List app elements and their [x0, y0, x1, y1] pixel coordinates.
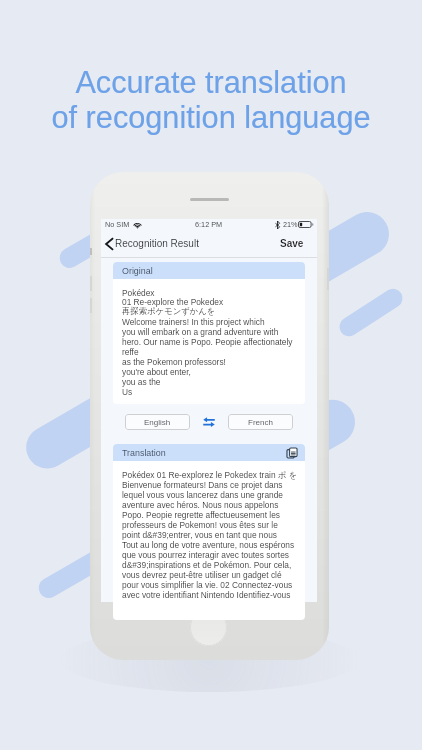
button[interactable]: Save [280, 230, 304, 257]
button[interactable]: Recognition Result [105, 230, 199, 257]
staticText: Accurate translation of recognition lang… [51, 65, 371, 135]
staticText: Translation [122, 448, 166, 458]
button[interactable]: Swap languages [201, 414, 217, 430]
button[interactable]: French [228, 414, 293, 430]
staticText: Pokédex 01 Re-explore the Pokedex 再探索ポケモ… [122, 288, 293, 396]
staticText: Original [122, 266, 153, 276]
staticText: English [144, 418, 171, 427]
staticText: No SIM [105, 220, 130, 228]
staticText: 6:12 PM [195, 220, 223, 228]
staticText: 21% [283, 220, 298, 228]
staticText: Save [280, 238, 304, 249]
button[interactable]: Copy translation [286, 447, 298, 459]
staticText: French [248, 418, 273, 427]
staticText: Pokédex 01 Re-explorez le Pokedex train … [122, 470, 298, 599]
button[interactable]: English [125, 414, 190, 430]
staticText: Recognition Result [115, 238, 199, 249]
